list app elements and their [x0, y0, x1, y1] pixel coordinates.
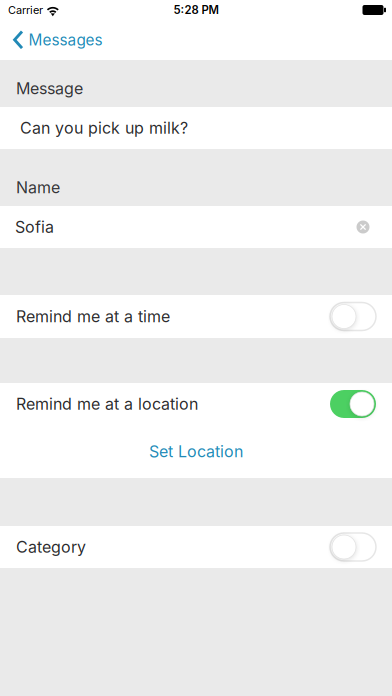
button[interactable]: Category [0, 526, 392, 568]
button[interactable]: Can you pick up milk? [0, 107, 392, 149]
staticText: Remind me at a time [16, 307, 170, 326]
staticText: Set Location [149, 442, 243, 461]
staticText: 5:28 PM [173, 3, 218, 17]
button[interactable]: Sofia [0, 206, 392, 248]
staticText: Message [16, 79, 83, 98]
staticText: Remind me at a location [16, 394, 198, 414]
button[interactable]: Remind me at a location [0, 383, 392, 425]
staticText: Can you pick up milk? [20, 118, 188, 138]
button[interactable]: Set Location [0, 425, 392, 478]
staticText: Carrier [8, 3, 43, 17]
button[interactable]: Clear text [350, 214, 376, 240]
staticText: Sofia [15, 217, 54, 237]
button[interactable]: Messages [0, 20, 114, 60]
staticText: Name [16, 178, 60, 197]
staticText: Category [16, 537, 86, 557]
button[interactable]: Remind me at a time [0, 295, 392, 338]
staticText: Messages [28, 31, 102, 49]
